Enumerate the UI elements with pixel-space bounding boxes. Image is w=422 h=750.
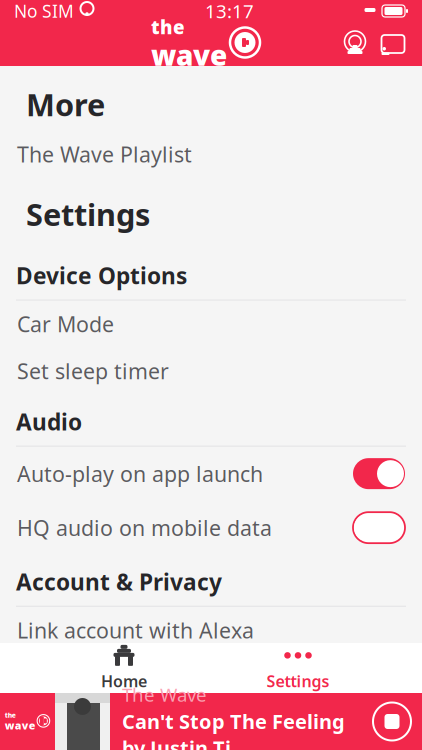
staticText: No SIM: [14, 0, 74, 22]
staticText: Device Options: [16, 260, 187, 290]
button[interactable]: Car Mode: [0, 301, 422, 348]
button[interactable]: Cast: [380, 33, 406, 55]
button[interactable]: Home: [74, 645, 174, 691]
staticText: Link account with Alexa: [17, 616, 254, 644]
button[interactable]: Link account with Alexa: [0, 607, 422, 654]
staticText: the: [5, 711, 16, 719]
button[interactable]: The Wave: [110, 693, 345, 750]
staticText: 13:17: [205, 0, 254, 23]
staticText: Set sleep timer: [17, 357, 169, 385]
button[interactable]: HQ audio on mobile data: [0, 501, 422, 555]
staticText: Can't Stop The Feeling by Justin Ti: [122, 708, 345, 750]
button[interactable]: Settings: [248, 645, 348, 691]
staticText: wave: [5, 718, 36, 732]
staticText: Settings: [266, 670, 329, 692]
staticText: wave: [151, 36, 227, 73]
staticText: HQ audio on mobile data: [17, 513, 272, 542]
staticText: Home: [101, 670, 147, 692]
staticText: The Wave Playlist: [17, 140, 192, 168]
staticText: Auto-play on app launch: [17, 459, 263, 488]
staticText: Settings: [26, 194, 150, 234]
staticText: the: [151, 14, 185, 39]
staticText: Car Mode: [17, 310, 114, 338]
button[interactable]: The Wave Playlist: [0, 131, 422, 178]
button[interactable]: Logout: [0, 654, 422, 701]
button[interactable]: Set sleep timer: [0, 348, 422, 395]
staticText: Audio: [16, 407, 82, 437]
staticText: Account & Privacy: [16, 567, 222, 597]
staticText: The Wave: [122, 682, 207, 707]
button[interactable]: Stop: [370, 699, 414, 743]
button[interactable]: AirPlay: [342, 31, 368, 57]
button[interactable]: Auto-play on app launch: [0, 447, 422, 501]
staticText: More: [26, 84, 105, 125]
button[interactable]: The Wave: [0, 693, 55, 750]
